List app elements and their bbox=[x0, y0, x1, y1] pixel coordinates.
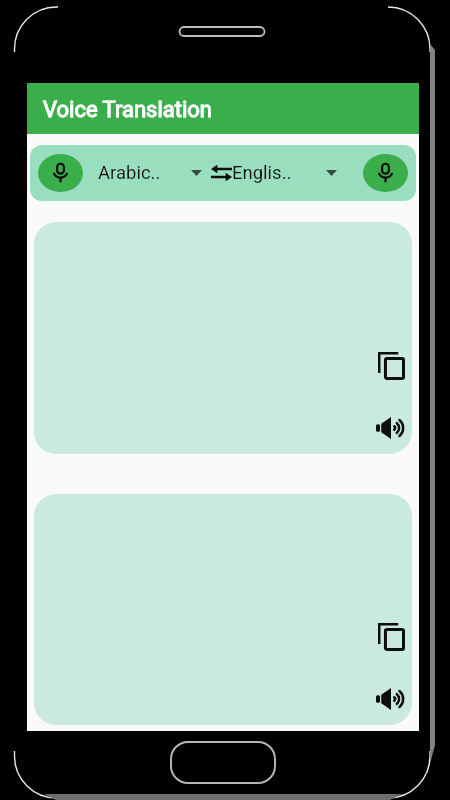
button[interactable]: Copy bbox=[34, 222, 412, 454]
button[interactable]: Copy bbox=[34, 494, 412, 725]
button[interactable]: Copy bbox=[371, 346, 411, 386]
button[interactable]: Englis.. bbox=[232, 162, 292, 184]
staticText: Voice Translation bbox=[43, 97, 212, 123]
button[interactable]: Play audio bbox=[371, 679, 411, 719]
staticText: Arabic.. bbox=[98, 162, 161, 184]
button[interactable]: Arabic.. bbox=[98, 162, 161, 184]
button[interactable]: Play audio bbox=[371, 408, 411, 448]
button[interactable]: Swap languages bbox=[208, 161, 232, 185]
button[interactable]: Voice Translation bbox=[27, 83, 419, 134]
button[interactable]: Choose source language bbox=[189, 163, 203, 183]
button[interactable]: Choose target language bbox=[324, 163, 338, 183]
staticText: Englis.. bbox=[232, 162, 292, 184]
button[interactable]: Speak source language bbox=[38, 154, 83, 192]
button[interactable]: Speak target language bbox=[363, 154, 408, 192]
button[interactable]: Copy bbox=[371, 617, 411, 657]
